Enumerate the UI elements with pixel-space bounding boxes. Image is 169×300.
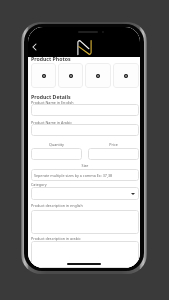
button[interactable]: Add photo <box>58 63 83 88</box>
staticText: Product Photos <box>31 55 71 62</box>
button[interactable]: Category dropdown <box>31 187 139 200</box>
staticText: Category <box>31 182 47 187</box>
button[interactable] <box>31 124 139 136</box>
button[interactable] <box>88 148 139 160</box>
button[interactable] <box>31 148 82 160</box>
staticText: Price <box>88 142 139 147</box>
staticText: Product description in arabic <box>31 236 81 241</box>
button[interactable]: Add photo <box>31 63 56 88</box>
staticText: Product Details <box>31 93 71 100</box>
staticText: Size <box>31 163 139 168</box>
staticText: Product Name in English <box>31 100 74 105</box>
staticText: Seperate multiple sizes by a comma Ex: 3… <box>34 173 113 178</box>
button[interactable] <box>31 241 139 268</box>
button[interactable]: Add photo <box>85 63 111 88</box>
button[interactable] <box>31 104 139 116</box>
staticText: Quantity <box>31 142 82 147</box>
button[interactable]: Back <box>28 41 40 53</box>
staticText: Product description in english <box>31 203 83 208</box>
button[interactable]: Seperate multiple sizes by a comma Ex: 3… <box>31 169 139 181</box>
staticText: Product Name in Arabic <box>31 120 72 125</box>
button[interactable]: Add photo <box>113 63 139 88</box>
button[interactable] <box>31 210 139 234</box>
